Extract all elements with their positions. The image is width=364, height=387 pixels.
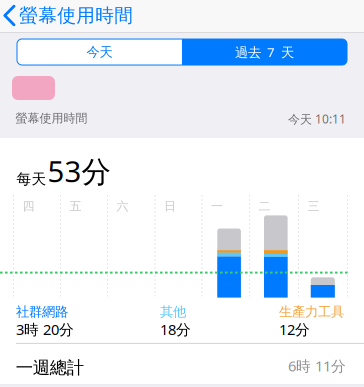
button[interactable]: 今天 xyxy=(17,39,182,65)
staticText: 每天 xyxy=(16,170,46,188)
button[interactable]: Back xyxy=(0,0,240,32)
staticText: 3時 20分 xyxy=(16,320,74,339)
staticText: 53分 xyxy=(47,151,110,190)
staticText: 二 xyxy=(258,199,270,214)
staticText: 社群網路 xyxy=(16,303,68,320)
staticText: 螢幕使用時間 xyxy=(16,111,88,126)
staticText: 6時 11分 xyxy=(288,356,346,375)
staticText: 五 xyxy=(69,199,81,214)
staticText: 日 xyxy=(164,199,176,214)
staticText: 12分 xyxy=(279,320,310,339)
staticText: 今天 10:11 xyxy=(288,111,346,127)
staticText: 六 xyxy=(116,199,128,214)
staticText: 其他 xyxy=(160,303,186,320)
staticText: 螢幕使用時間 xyxy=(19,4,133,27)
staticText: 18分 xyxy=(160,320,191,339)
staticText: 三 xyxy=(307,199,319,214)
staticText: 四 xyxy=(22,199,34,214)
button[interactable]: 過去 7 天 xyxy=(182,39,347,65)
staticText: 一週總計 xyxy=(16,357,84,378)
staticText: 生產力工具 xyxy=(279,303,344,320)
staticText: 過去 7 天 xyxy=(235,43,294,61)
staticText: 一 xyxy=(211,199,223,214)
staticText: 今天 xyxy=(86,44,112,60)
